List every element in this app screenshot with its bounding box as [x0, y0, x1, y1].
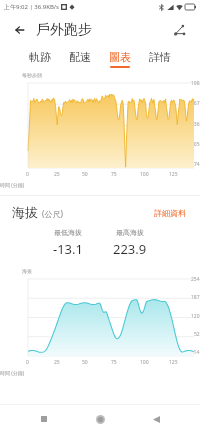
staticText: 配速 — [69, 50, 91, 64]
staticText: 167 — [191, 100, 200, 107]
staticText: 每秒步頻 — [22, 72, 42, 78]
staticText: 圖表 — [109, 50, 131, 64]
staticText: 187 — [191, 294, 200, 301]
staticText: 0 — [26, 171, 29, 178]
staticText: 50 — [82, 171, 88, 178]
button[interactable]: 配速 — [67, 48, 93, 70]
staticText: 105 — [191, 141, 200, 148]
staticText: 52 — [194, 331, 200, 338]
staticText: 120 — [191, 313, 200, 320]
staticText: 上午9:02 | 36.9KB/s — [4, 3, 59, 11]
staticText: 125 — [169, 359, 178, 366]
staticText: 戶外跑步 — [36, 21, 92, 39]
button[interactable]: Share — [168, 19, 190, 41]
button[interactable]: 詳情 — [147, 48, 173, 70]
staticText: 時間 (分鐘) — [0, 182, 190, 189]
staticText: 75 — [111, 359, 117, 366]
staticText: 25 — [54, 359, 60, 366]
staticText: -13.1 — [53, 240, 83, 258]
staticText: 254 — [191, 276, 200, 283]
staticText: 時間 (分鐘) — [0, 370, 190, 377]
staticText: 198 — [191, 80, 200, 87]
staticText: 25 — [54, 171, 60, 178]
button[interactable]: Recent apps — [32, 407, 56, 431]
staticText: 最高海拔 — [116, 228, 144, 237]
button[interactable]: 詳細資料 — [152, 206, 188, 220]
staticText: 223.9 — [113, 240, 147, 258]
button[interactable]: Back — [10, 20, 30, 40]
staticText: 詳情 — [149, 50, 171, 64]
staticText: 75 — [111, 171, 117, 178]
staticText: 海拔 — [12, 204, 38, 220]
staticText: 125 — [169, 171, 178, 178]
staticText: 74 — [194, 161, 200, 168]
staticText: 136 — [191, 121, 200, 128]
staticText: 100 — [140, 359, 149, 366]
button[interactable]: Home — [88, 407, 112, 431]
button[interactable]: 軌跡 — [27, 48, 53, 70]
staticText: 軌跡 — [29, 50, 51, 64]
staticText: 50 — [82, 359, 88, 366]
staticText: 海拔 — [22, 268, 32, 274]
staticText: -14 — [192, 349, 200, 356]
staticText: 0 — [26, 359, 29, 366]
button[interactable]: 圖表 — [107, 48, 133, 70]
staticText: 100 — [140, 171, 149, 178]
button[interactable]: Back — [144, 407, 168, 431]
staticText: (公尺) — [42, 208, 63, 219]
staticText: 最低海拔 — [54, 228, 82, 237]
staticText: 詳細資料 — [154, 208, 186, 218]
